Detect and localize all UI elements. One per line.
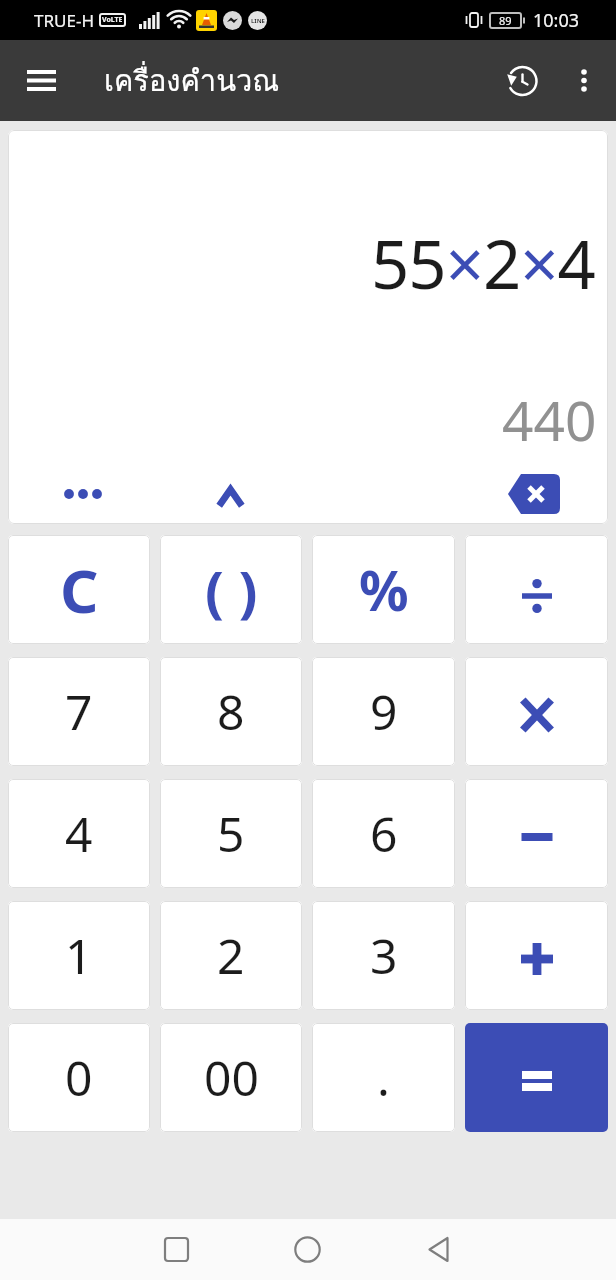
button[interactable] — [465, 779, 608, 888]
button[interactable]: 6 — [312, 779, 455, 888]
button[interactable]: ( ) — [160, 535, 302, 644]
staticText: 00 — [204, 1045, 259, 1110]
button[interactable] — [498, 468, 570, 520]
staticText: C — [60, 549, 99, 631]
button[interactable]: 1 — [8, 901, 150, 1010]
staticText: 0 — [65, 1045, 93, 1110]
button[interactable]: 7 — [8, 657, 150, 766]
button[interactable]: 2 — [160, 901, 302, 1010]
staticText: 55×2×4 — [371, 217, 595, 308]
button[interactable] — [41, 472, 125, 516]
button[interactable]: 4 — [8, 779, 150, 888]
staticText: 7 — [65, 679, 93, 744]
button[interactable] — [373, 1219, 504, 1280]
staticText: TRUE-H — [34, 9, 94, 32]
button[interactable] — [480, 40, 564, 121]
button[interactable] — [465, 535, 608, 644]
staticText: 3 — [370, 923, 398, 988]
staticText: VoLTE — [102, 15, 123, 25]
staticText: 9 — [370, 679, 398, 744]
button[interactable] — [564, 40, 604, 121]
button[interactable]: 3 — [312, 901, 455, 1010]
staticText: % — [359, 552, 409, 627]
button[interactable] — [0, 40, 82, 121]
button[interactable]: C — [8, 535, 150, 644]
button[interactable]: 9 — [312, 657, 455, 766]
staticText: 89 — [499, 13, 512, 28]
staticText: LINE — [251, 17, 265, 25]
staticText: 8 — [217, 679, 245, 744]
staticText: 440 — [502, 382, 597, 457]
button[interactable] — [465, 657, 608, 766]
button[interactable]: 8 — [160, 657, 302, 766]
button[interactable] — [465, 1023, 608, 1132]
button[interactable] — [242, 1219, 373, 1280]
button[interactable]: 00 — [160, 1023, 302, 1132]
button[interactable] — [200, 475, 261, 519]
button[interactable]: 0 — [8, 1023, 150, 1132]
button[interactable]: . — [312, 1023, 455, 1132]
staticText: 1 — [65, 923, 93, 988]
button[interactable] — [111, 1219, 242, 1280]
staticText: 5 — [217, 801, 245, 866]
staticText: 2 — [217, 923, 245, 988]
button[interactable]: 5 — [160, 779, 302, 888]
staticText: 6 — [370, 801, 398, 866]
staticText: เครื่องคำนวณ — [104, 58, 280, 104]
staticText: . — [377, 1045, 390, 1110]
button[interactable] — [465, 901, 608, 1010]
staticText: ( ) — [205, 552, 258, 628]
staticText: 4 — [65, 801, 93, 866]
button[interactable]: % — [312, 535, 455, 644]
staticText: 10:03 — [533, 8, 580, 33]
